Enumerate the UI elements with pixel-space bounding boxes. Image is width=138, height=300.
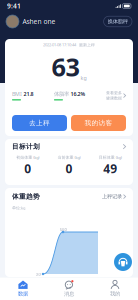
staticText: 63.0 bbox=[60, 227, 67, 232]
staticText: 63 bbox=[51, 50, 79, 83]
staticText: 21.8 bbox=[24, 90, 34, 98]
staticText: 体重趋势 bbox=[12, 192, 40, 201]
button[interactable]: 消息 bbox=[46, 277, 92, 300]
button[interactable]: 上秤记录 bbox=[102, 193, 126, 200]
button[interactable]: 目标计划 bbox=[5, 139, 133, 151]
button[interactable]: 我的访客 bbox=[71, 115, 126, 131]
staticText: 查看更多 bbox=[106, 90, 122, 95]
staticText: 9:41 bbox=[7, 2, 21, 10]
staticText: kg bbox=[81, 74, 87, 81]
staticText: 健康数据 bbox=[106, 96, 122, 101]
button[interactable]: 数据 bbox=[0, 277, 46, 300]
staticText: 上秤记录 bbox=[102, 193, 122, 200]
staticText: 目标体重 (kg) bbox=[99, 155, 122, 160]
staticText: 49 bbox=[103, 160, 117, 176]
staticText: 单位:kg bbox=[12, 205, 25, 210]
button[interactable]: 在线客服 bbox=[114, 253, 132, 271]
staticText: BMI bbox=[12, 90, 22, 98]
staticText: 2022-01-08 17:10:44 最新上秤 bbox=[43, 42, 95, 47]
staticText: 换体脂秤 bbox=[108, 18, 128, 25]
staticText: 16.2% bbox=[71, 90, 86, 98]
staticText: 目标计划 bbox=[12, 142, 40, 151]
button[interactable]: 我的 bbox=[92, 277, 138, 300]
staticText: 体脂率 bbox=[54, 91, 69, 97]
button[interactable]: 换体脂秤 bbox=[104, 16, 132, 27]
staticText: 当前体重 (kg) bbox=[57, 155, 80, 160]
staticText: 数据 bbox=[18, 290, 28, 297]
button[interactable]: 查看更多 bbox=[106, 90, 126, 101]
staticText: 0 bbox=[65, 160, 72, 176]
staticText: 0 bbox=[24, 160, 31, 176]
staticText: 消息 bbox=[64, 291, 74, 297]
staticText: Ashen one bbox=[22, 17, 55, 26]
staticText: 初始体重 (kg) bbox=[16, 155, 39, 160]
staticText: 去上秤 bbox=[29, 119, 50, 127]
button[interactable]: 去上秤 bbox=[12, 115, 67, 131]
staticText: 0.0 bbox=[35, 272, 40, 277]
staticText: 我的 bbox=[110, 290, 120, 297]
staticText: 我的访客 bbox=[84, 119, 112, 127]
